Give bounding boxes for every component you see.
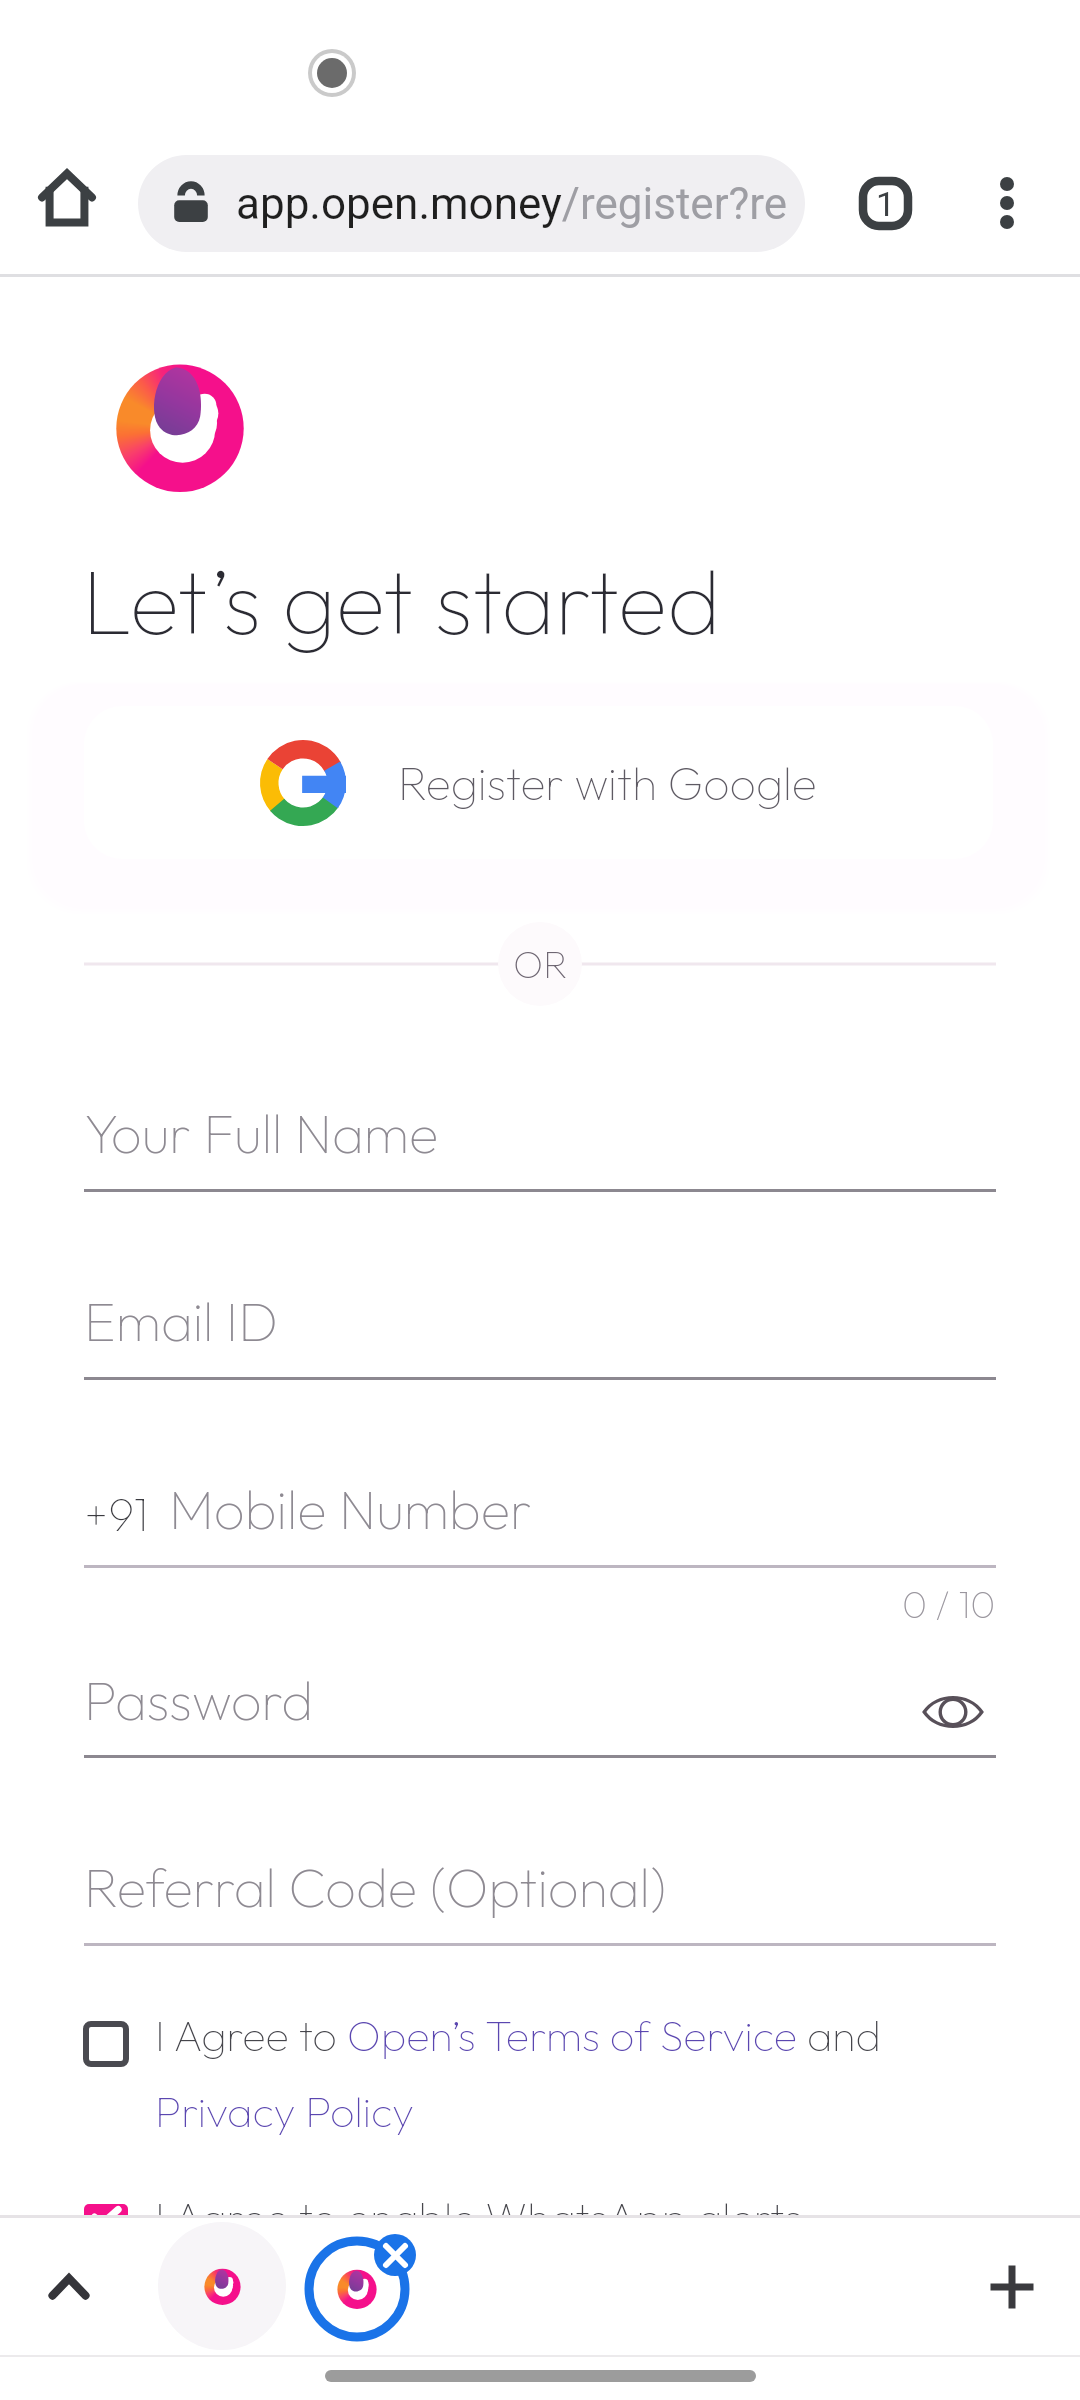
staticText: 1 [876, 184, 896, 224]
staticText: I Agree to Open’s Terms of Service and P… [155, 2008, 996, 2138]
button[interactable]: Switch tabs [805, 132, 965, 274]
staticText: Mobile Number [169, 1475, 532, 1543]
staticText: I Agree to enable WhatsApp alerts [155, 2190, 802, 2215]
staticText: app.open.money/register?re [236, 178, 788, 230]
button[interactable]: Close tab [374, 2234, 416, 2276]
button[interactable]: I Agree to enable WhatsApp alerts [84, 2190, 996, 2215]
button[interactable]: More options [965, 132, 1080, 274]
button[interactable]: Home [0, 132, 138, 274]
button[interactable]: I Agree to Open’s Terms of Service and P… [84, 2008, 996, 2138]
staticText: Let’s get started [82, 543, 721, 658]
staticText: Referral Code (Optional) [84, 1853, 667, 1921]
staticText: 0 / 10 [902, 1580, 996, 1628]
button[interactable]: New tab [944, 2218, 1080, 2355]
staticText: OR [513, 940, 568, 988]
button[interactable]: Show password [916, 1676, 990, 1748]
button[interactable]: Expand tab strip [2, 2218, 135, 2355]
staticText: Password [84, 1666, 314, 1734]
staticText: Email ID [84, 1287, 279, 1355]
button[interactable] [158, 2222, 286, 2350]
button[interactable]: Register with Google [84, 706, 993, 859]
button[interactable]: app.open.money/register?re [138, 155, 805, 252]
staticText: Your Full Name [84, 1099, 439, 1167]
button[interactable]: Close tab [283, 2220, 431, 2357]
staticText: +91 [84, 1485, 149, 1543]
staticText: Register with Google [398, 754, 817, 812]
